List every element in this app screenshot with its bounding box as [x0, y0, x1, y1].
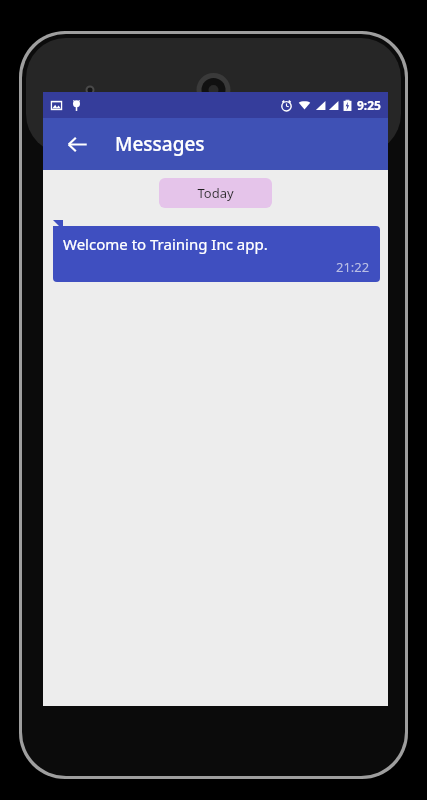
staticText: Welcome to Training Inc app.	[63, 234, 268, 254]
staticText: 9:25	[357, 97, 381, 113]
staticText: 21:22	[336, 258, 370, 276]
staticText: Messages	[115, 131, 205, 157]
staticText: Today	[197, 184, 234, 202]
button[interactable]: Welcome to Training Inc app.	[53, 226, 380, 282]
button[interactable]: Back	[57, 124, 97, 164]
button[interactable]: Today	[159, 178, 272, 208]
